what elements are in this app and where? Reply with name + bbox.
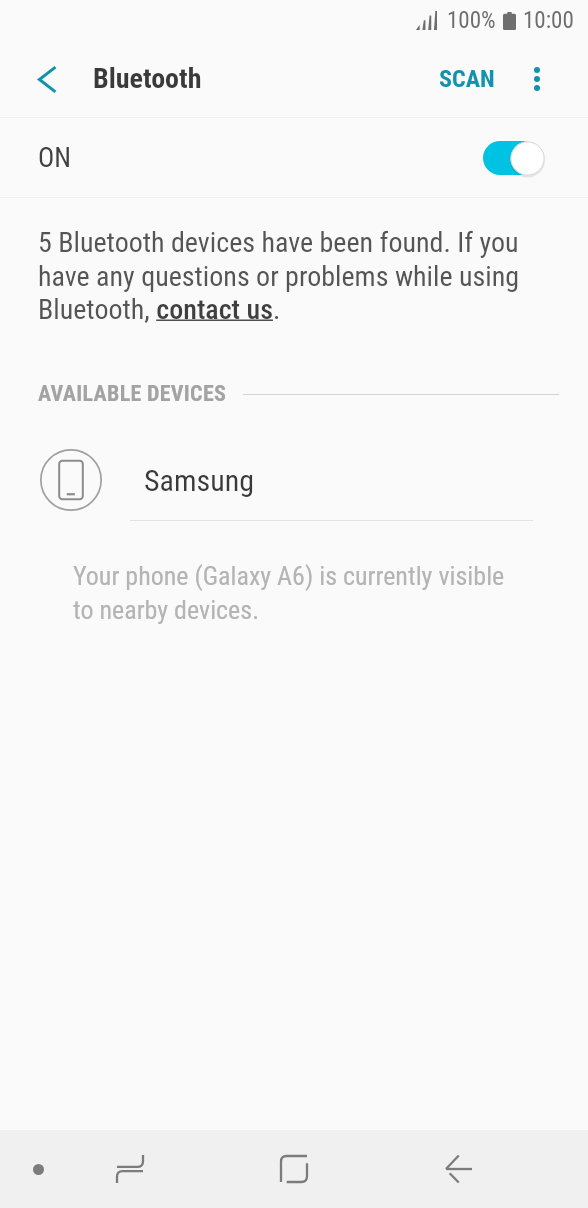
button[interactable]: SCAN [425, 51, 509, 107]
staticText: Your phone (Galaxy A6) is currently visi… [73, 561, 518, 625]
button[interactable]: Recent apps [102, 1141, 158, 1197]
button[interactable]: Samsung [0, 435, 588, 521]
staticText: Bluetooth [93, 62, 202, 95]
staticText: 5 Bluetooth devices have been found. If … [38, 226, 538, 325]
staticText: 100% [447, 7, 496, 34]
button[interactable]: More options [509, 51, 565, 107]
button[interactable]: Menu [10, 1141, 66, 1197]
staticText: SCAN [439, 65, 495, 93]
button[interactable]: Navigate up [18, 51, 74, 107]
button[interactable]: Home [266, 1141, 322, 1197]
staticText: AVAILABLE DEVICES [38, 381, 227, 407]
staticText: 10:00 [523, 7, 574, 34]
button[interactable]: ON [0, 118, 588, 197]
staticText: ON [38, 142, 71, 174]
staticText: Samsung [144, 463, 255, 498]
button[interactable]: Back [431, 1141, 487, 1197]
